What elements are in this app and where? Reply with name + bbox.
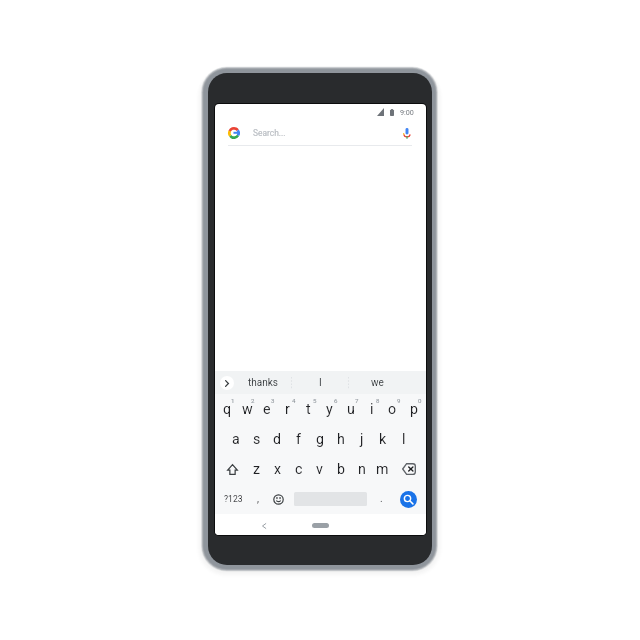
button[interactable]: , — [250, 484, 266, 514]
button[interactable]: w — [237, 394, 257, 424]
staticText: 6 — [334, 397, 338, 404]
button[interactable]: a — [226, 424, 246, 454]
staticText: I — [319, 377, 322, 389]
button[interactable]: Space — [289, 484, 371, 514]
staticText: n — [358, 461, 366, 478]
button[interactable]: ?123 — [215, 484, 251, 514]
staticText: a — [232, 431, 240, 448]
staticText: 9 — [397, 397, 401, 404]
staticText: g — [316, 431, 324, 448]
button[interactable]: Back — [257, 519, 270, 532]
staticText: 5 — [313, 397, 317, 404]
staticText: we — [371, 377, 384, 389]
staticText: t — [306, 401, 311, 418]
button[interactable]: z — [247, 454, 267, 484]
button[interactable]: s — [246, 424, 267, 454]
staticText: r — [285, 401, 290, 418]
staticText: c — [295, 461, 303, 478]
button[interactable]: Expand suggestions — [220, 376, 234, 390]
staticText: 0 — [418, 397, 422, 404]
staticText: k — [379, 431, 387, 448]
button[interactable]: x — [267, 454, 288, 484]
staticText: j — [360, 431, 364, 448]
staticText: y — [326, 401, 333, 418]
button[interactable]: Emoji — [268, 484, 289, 514]
staticText: , — [257, 493, 259, 505]
staticText: 4 — [292, 397, 296, 404]
button[interactable]: p — [403, 394, 424, 424]
button[interactable]: m — [372, 454, 393, 484]
button[interactable]: I — [292, 371, 348, 394]
staticText: u — [347, 401, 355, 418]
staticText: 3 — [271, 397, 275, 404]
button[interactable]: i — [361, 394, 382, 424]
button[interactable]: Search — [391, 484, 425, 514]
button[interactable]: o — [382, 394, 403, 424]
staticText: v — [316, 461, 323, 478]
staticText: o — [388, 401, 397, 418]
button[interactable]: t — [298, 394, 319, 424]
staticText: z — [253, 461, 261, 478]
button[interactable]: Home — [312, 523, 329, 528]
staticText: e — [263, 401, 271, 418]
button[interactable]: f — [288, 424, 309, 454]
button[interactable]: j — [351, 424, 372, 454]
button[interactable]: l — [393, 424, 414, 454]
staticText: b — [337, 461, 345, 478]
staticText: x — [274, 461, 282, 478]
staticText: q — [223, 401, 232, 418]
button[interactable]: we — [349, 371, 405, 394]
button[interactable]: g — [309, 424, 330, 454]
button[interactable]: v — [309, 454, 330, 484]
staticText: 8 — [376, 397, 380, 404]
button[interactable]: Shift — [217, 454, 247, 484]
staticText: w — [242, 401, 253, 418]
button[interactable]: k — [372, 424, 393, 454]
staticText: p — [410, 401, 418, 418]
staticText: . — [380, 493, 383, 505]
staticText: h — [337, 431, 345, 448]
staticText: 2 — [251, 397, 255, 404]
button[interactable]: q — [217, 394, 237, 424]
staticText: f — [296, 431, 301, 448]
staticText: s — [253, 431, 261, 448]
button[interactable]: b — [330, 454, 351, 484]
button[interactable]: r — [277, 394, 298, 424]
staticText: m — [376, 461, 389, 478]
button[interactable]: h — [330, 424, 351, 454]
button[interactable]: y — [319, 394, 340, 424]
staticText: i — [370, 401, 374, 418]
button[interactable]: . — [372, 484, 390, 514]
button[interactable]: d — [267, 424, 288, 454]
staticText: 7 — [355, 397, 359, 404]
button[interactable]: n — [351, 454, 372, 484]
staticText: Search... — [253, 128, 286, 138]
staticText: 1 — [231, 397, 235, 404]
button[interactable]: thanks — [234, 371, 291, 394]
button[interactable]: u — [340, 394, 361, 424]
staticText: l — [402, 431, 406, 448]
staticText: ?123 — [224, 494, 243, 504]
button[interactable]: e — [257, 394, 277, 424]
staticText: thanks — [248, 377, 278, 389]
staticText: 9:00 — [400, 108, 414, 116]
staticText: d — [273, 431, 282, 448]
button[interactable]: c — [288, 454, 309, 484]
button[interactable]: Backspace — [393, 454, 424, 484]
